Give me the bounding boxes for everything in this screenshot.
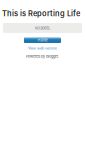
staticText: Powered by Blogger. bbox=[26, 54, 59, 59]
button[interactable]: View web version bbox=[28, 46, 57, 50]
button[interactable]: Home bbox=[24, 37, 61, 43]
staticText: View web version bbox=[28, 46, 57, 50]
staticText: Home bbox=[37, 38, 47, 42]
button[interactable]: Powered by Blogger. bbox=[26, 54, 59, 59]
staticText: No posts. bbox=[34, 26, 50, 30]
staticText: This is Reporting Life bbox=[2, 9, 80, 18]
